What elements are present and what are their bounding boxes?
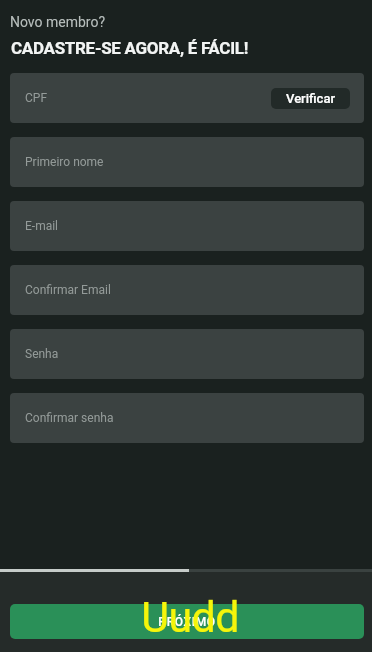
staticText: CADASTRE-SE AGORA, É FÁCIL! (11, 38, 249, 58)
button[interactable]: CPF (10, 73, 364, 123)
staticText: Confirmar Email (25, 283, 111, 297)
button[interactable]: Confirmar senha (10, 393, 364, 443)
staticText: Verificar (286, 91, 335, 106)
button[interactable]: E-mail (10, 201, 364, 251)
staticText: Confirmar senha (25, 411, 114, 425)
staticText: Senha (25, 347, 59, 361)
button[interactable]: Verificar (271, 88, 350, 109)
button[interactable]: Primeiro nome (10, 137, 364, 187)
staticText: PRÓXIMO (158, 615, 216, 629)
staticText: Novo membro? (10, 14, 106, 30)
button[interactable]: Confirmar Email (10, 265, 364, 315)
staticText: Primeiro nome (25, 155, 104, 169)
staticText: E-mail (25, 219, 59, 233)
staticText: Uudd (141, 592, 239, 642)
button[interactable]: PRÓXIMO (10, 604, 364, 639)
staticText: CPF (25, 91, 48, 105)
button[interactable]: Senha (10, 329, 364, 379)
